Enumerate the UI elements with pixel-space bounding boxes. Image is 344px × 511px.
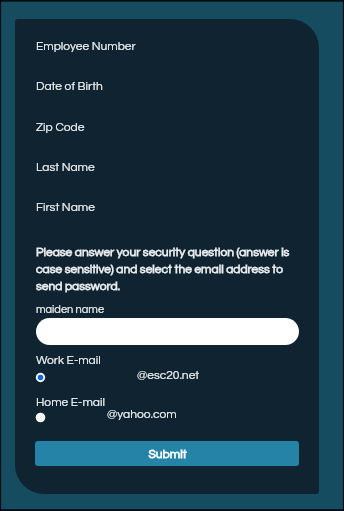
staticText: Date of Birth (36, 80, 103, 92)
staticText: maiden name (36, 304, 105, 315)
staticText: Submit (148, 448, 187, 460)
staticText: Zip Code (36, 121, 85, 133)
staticText: Employee Number (36, 40, 136, 52)
button[interactable]: Submit (35, 441, 299, 466)
staticText: @esc20.net (137, 369, 200, 381)
staticText: First Name (36, 201, 95, 213)
staticText: Work E-mail (36, 354, 101, 366)
staticText: Home E-mail (36, 396, 105, 408)
staticText: Please answer your security question (an… (36, 246, 298, 292)
button[interactable]: Home E-mail option (32, 409, 49, 426)
button[interactable]: Work E-mail option (32, 369, 49, 386)
staticText: Last Name (36, 161, 95, 173)
staticText: @yahoo.com (107, 408, 177, 420)
button[interactable]: maiden name input (36, 318, 299, 345)
